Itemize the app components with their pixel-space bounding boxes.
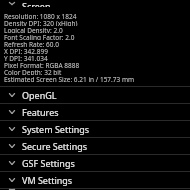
button[interactable]: Expand VM Settings <box>0 172 190 188</box>
staticText: Density DPI: 320 (xHigh) <box>4 19 186 26</box>
button[interactable]: Expand GSF Settings <box>0 155 190 171</box>
other: Expand System Settings <box>7 124 17 134</box>
staticText: Y DPI: 341.034 <box>4 54 186 61</box>
staticText: Pixel Format: RGBA 8888 <box>4 61 186 68</box>
staticText: X DPI: 342.899 <box>4 47 186 54</box>
staticText: System Settings <box>22 123 90 135</box>
other: Expand Secure Settings <box>7 141 17 151</box>
staticText: VM Settings <box>22 174 73 186</box>
button[interactable]: Collapse Screen <box>0 0 190 7</box>
button[interactable]: Expand System Settings <box>0 121 190 137</box>
staticText: Estimated Screen Size: 6.21 in / 157.73 … <box>4 75 186 82</box>
other: Expand VM Settings <box>7 175 17 185</box>
button[interactable]: Expand Environment Variables <box>0 189 190 190</box>
button[interactable]: Expand Secure Settings <box>0 138 190 154</box>
staticText: Resolution: 1080 x 1824 <box>4 12 186 19</box>
staticText: Logical Density: 2.0 <box>4 26 186 33</box>
staticText: Features <box>22 106 59 118</box>
other: Collapse Screen <box>7 0 17 7</box>
button[interactable]: Expand Features <box>0 104 190 120</box>
staticText: Color Depth: 32 bit <box>4 68 186 75</box>
staticText: GSF Settings <box>22 157 75 169</box>
other: Expand GSF Settings <box>7 158 17 168</box>
staticText: Secure Settings <box>22 140 88 152</box>
button[interactable]: Expand OpenGL <box>0 87 190 103</box>
other: Expand OpenGL <box>7 90 17 100</box>
staticText: Font Scaling Factor: 2.0 <box>4 33 186 40</box>
other: Expand Features <box>7 107 17 117</box>
other: Expand Environment Variables <box>7 189 17 190</box>
staticText: Refresh Rate: 60.0 <box>4 40 186 47</box>
staticText: Screen <box>22 0 51 7</box>
staticText: OpenGL <box>22 89 57 101</box>
